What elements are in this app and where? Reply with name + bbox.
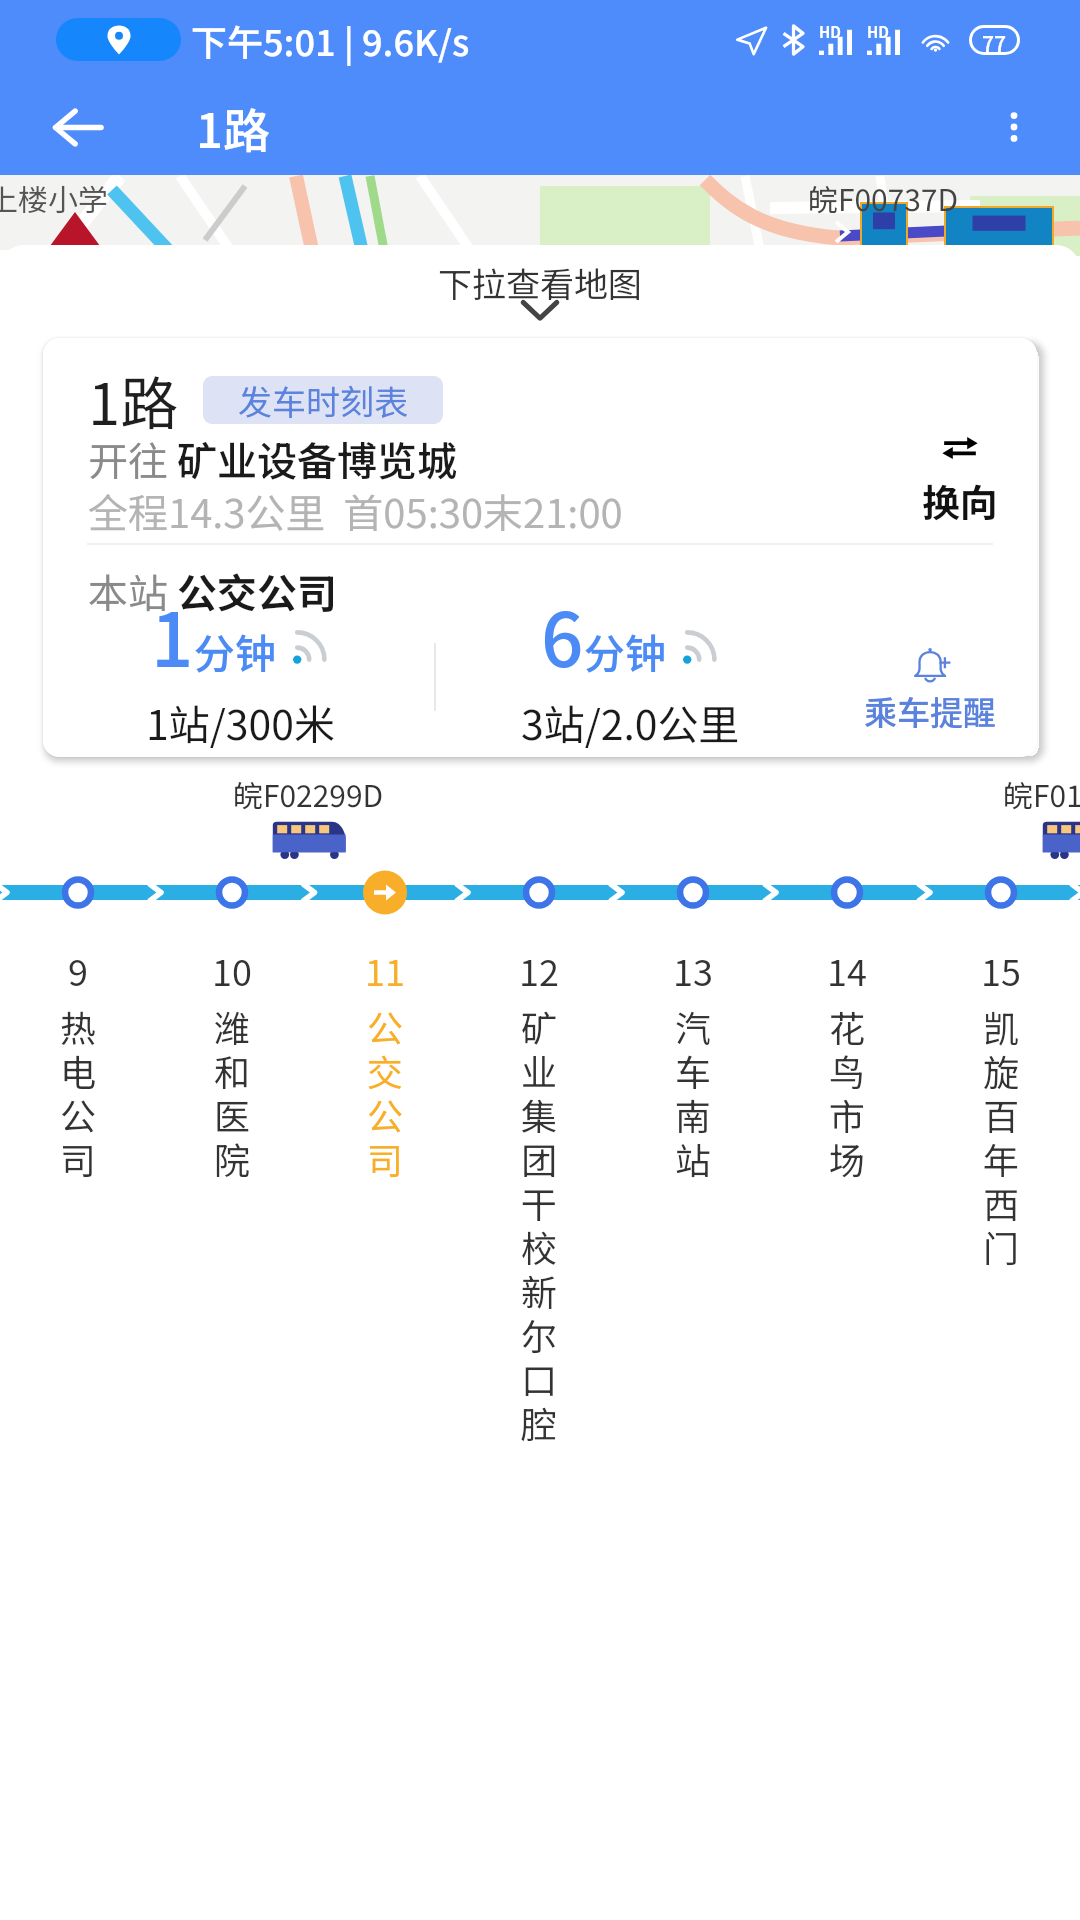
button[interactable]: Back — [30, 79, 126, 175]
staticText: 15 — [981, 944, 1021, 996]
staticText: 上楼小学 — [0, 176, 108, 219]
staticText: 1站/300米 — [146, 692, 335, 751]
staticText: 皖F01299D — [1003, 772, 1080, 815]
staticText: 潍 和 医 院 — [155, 1000, 309, 1185]
button[interactable]: 11 — [308, 944, 462, 1185]
staticText: 矿 业 集 团 干 校 新 尔 口 腔 — [462, 1000, 616, 1449]
staticText: 分钟 — [584, 621, 666, 680]
staticText: 下午5:01 | 9.6K/s — [191, 14, 470, 66]
staticText: 77 — [982, 28, 1007, 52]
button[interactable]: 12 — [462, 944, 616, 1449]
staticText: 分钟 — [194, 621, 276, 680]
staticText: 汽 车 南 站 — [616, 1000, 770, 1185]
staticText: 公 交 公 司 — [308, 1000, 462, 1185]
button[interactable]: 发车时刻表 — [203, 376, 443, 424]
staticText: 12 — [519, 944, 559, 996]
staticText: 1路 — [88, 358, 179, 442]
staticText: HD — [819, 21, 841, 43]
staticText: 11 — [365, 944, 405, 996]
staticText: 6 — [541, 581, 584, 688]
staticText: 皖F02299D — [233, 772, 384, 815]
staticText: 1路 — [196, 93, 270, 161]
staticText: 矿业设备博览城 — [177, 430, 457, 488]
staticText: 13 — [673, 944, 713, 996]
button[interactable]: 10 — [155, 944, 309, 1185]
button[interactable]: More options — [966, 79, 1062, 175]
staticText: 开往 — [88, 430, 177, 488]
staticText: 14 — [827, 944, 867, 996]
staticText: 本站 — [88, 562, 177, 620]
staticText: 全程14.3公里 首05:30末21:00 — [88, 482, 623, 540]
button[interactable]: 13 — [616, 944, 770, 1185]
staticText: 花 鸟 市 场 — [770, 1000, 924, 1185]
staticText: 皖F00737D — [808, 176, 959, 219]
staticText: 凯 旋 百 年 西 门 — [924, 1000, 1078, 1273]
staticText: 换向 — [922, 473, 999, 528]
button[interactable]: 9 — [1, 944, 155, 1185]
staticText: 公交公司 — [177, 562, 337, 620]
staticText: 3站/2.0公里 — [521, 692, 740, 751]
staticText: 1 — [151, 581, 194, 688]
button[interactable]: 15 — [924, 944, 1078, 1273]
button[interactable]: 换向 — [880, 437, 1037, 528]
staticText: HD — [867, 21, 889, 43]
staticText: 乘车提醒 — [864, 687, 996, 735]
button[interactable]: 乘车提醒 — [830, 645, 1030, 735]
staticText: 10 — [212, 944, 252, 996]
staticText: 发车时刻表 — [238, 376, 408, 424]
button[interactable]: 14 — [770, 944, 924, 1185]
staticText: 下拉查看地图 — [438, 258, 642, 307]
staticText: 热 电 公 司 — [1, 1000, 155, 1185]
staticText: 9 — [68, 944, 88, 996]
